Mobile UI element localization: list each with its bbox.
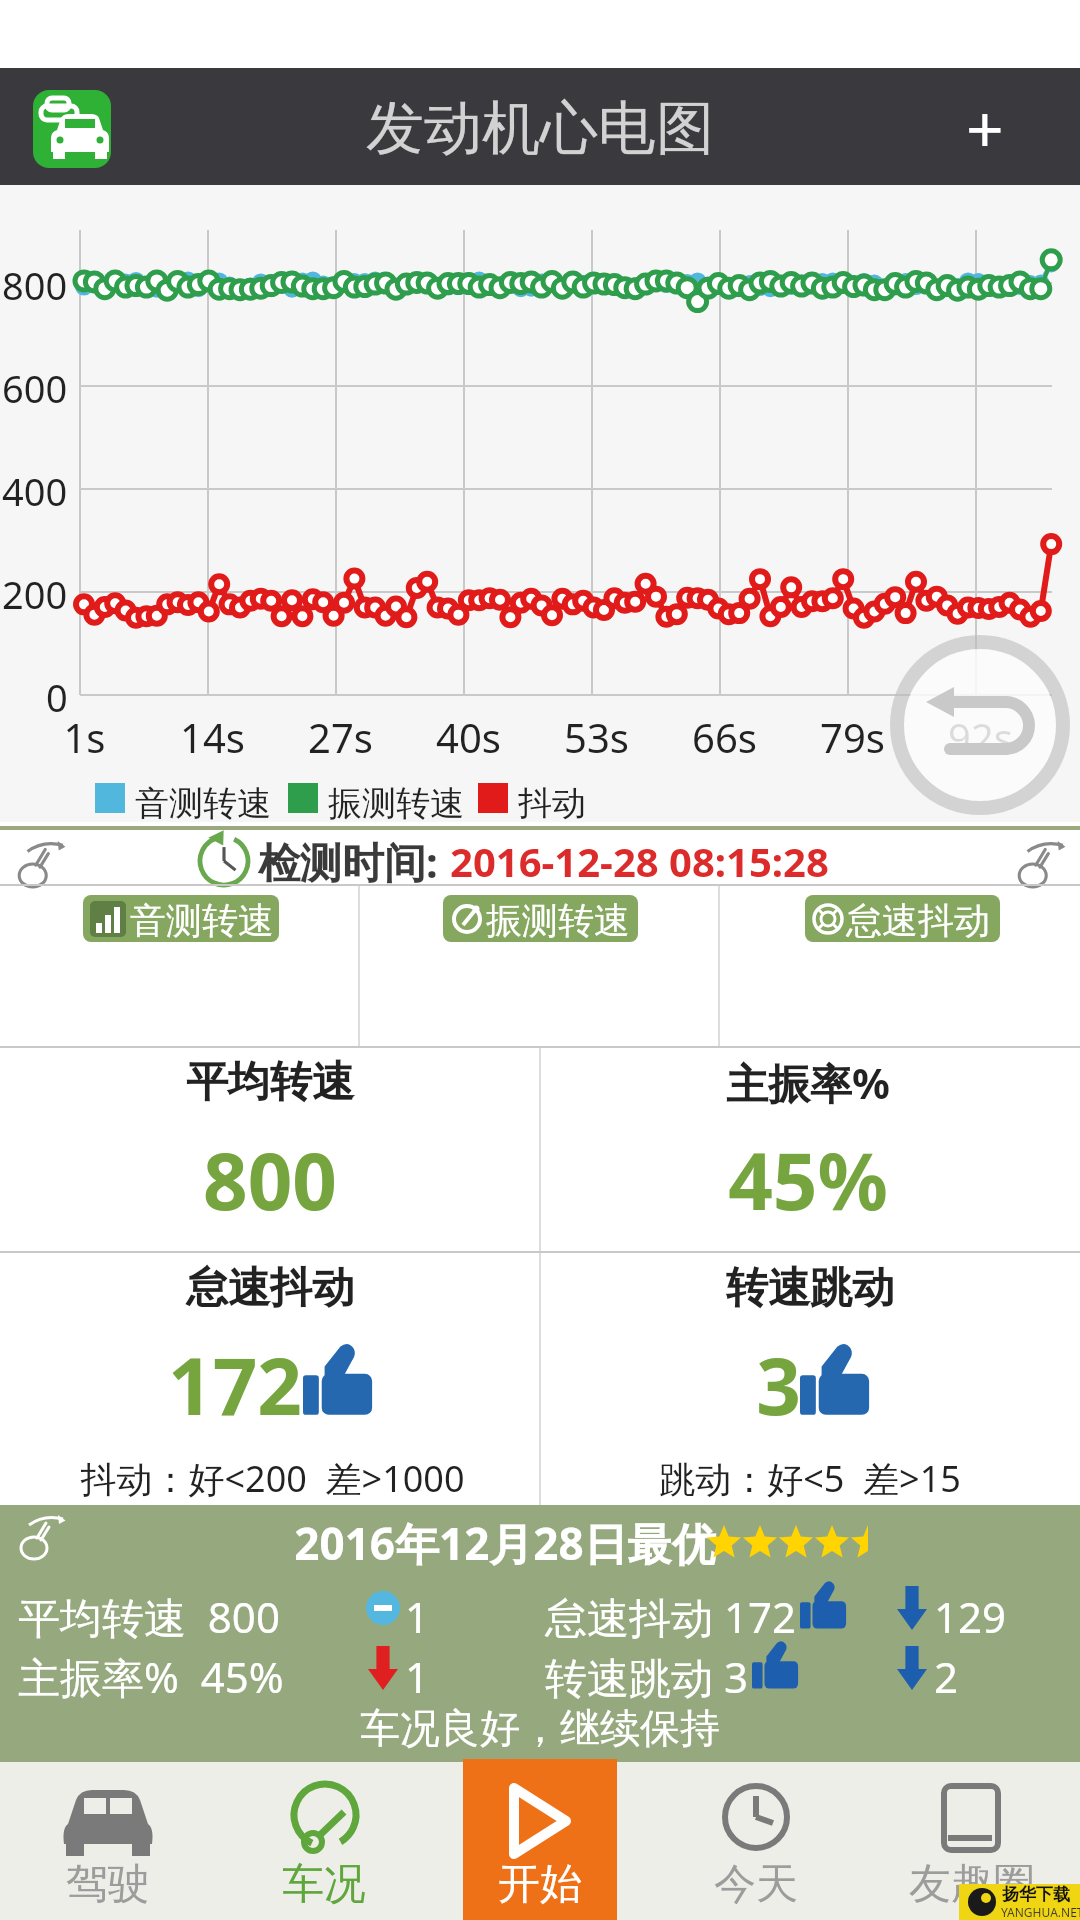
- staticText: 平均转速 800: [18, 1588, 280, 1645]
- staticText: 172: [168, 1332, 302, 1438]
- staticText: 1: [405, 1648, 430, 1705]
- staticText: 92s: [948, 710, 1013, 764]
- staticText: 66s: [692, 710, 757, 764]
- staticText: 平均转速: [186, 1056, 354, 1109]
- staticText: 开始: [498, 1858, 582, 1911]
- staticText: 200: [2, 568, 68, 616]
- staticText: 14s: [180, 710, 245, 764]
- staticText: 驾驶: [66, 1858, 150, 1911]
- staticText: 45%: [728, 1127, 888, 1233]
- staticText: 转速跳动 3: [545, 1648, 748, 1705]
- staticText: 友趣圈: [909, 1858, 1035, 1911]
- staticText: 车况: [282, 1858, 366, 1911]
- staticText: YANGHUA.NET: [1001, 1904, 1080, 1920]
- staticText: 检测时间:: [258, 833, 438, 890]
- staticText: 音测转速: [130, 898, 274, 943]
- staticText: 转速跳动: [726, 1262, 894, 1315]
- staticText: 主振率% 45%: [18, 1648, 284, 1705]
- staticText: 怠速抖动: [186, 1262, 354, 1315]
- staticText: 2: [934, 1648, 959, 1705]
- staticText: 主振率%: [726, 1054, 890, 1111]
- staticText: 音测转速: [135, 782, 271, 825]
- staticText: 发动机心电图: [366, 92, 714, 165]
- staticText: 53s: [564, 710, 629, 764]
- staticText: 振测转速: [328, 782, 464, 825]
- staticText: 27s: [308, 710, 373, 764]
- staticText: 800: [203, 1127, 337, 1233]
- staticText: 0: [46, 671, 68, 719]
- staticText: 1s: [63, 710, 106, 764]
- staticText: 抖动：好<200 差>1000: [80, 1454, 465, 1503]
- staticText: 振测转速: [486, 898, 630, 943]
- staticText: 抖动: [518, 782, 586, 825]
- staticText: 129: [934, 1588, 1007, 1645]
- staticText: 600: [2, 362, 68, 410]
- staticText: 车况良好，继续保持: [360, 1703, 720, 1753]
- staticText: 怠速抖动: [846, 898, 990, 943]
- staticText: 40s: [436, 710, 501, 764]
- staticText: 怠速抖动 172: [545, 1588, 796, 1645]
- staticText: 400: [2, 465, 68, 513]
- staticText: 2016-12-28 08:15:28: [450, 834, 829, 888]
- staticText: +: [966, 82, 1004, 172]
- staticText: 今天: [714, 1858, 798, 1911]
- staticText: 扬华下载: [1002, 1884, 1070, 1905]
- staticText: 79s: [820, 710, 885, 764]
- staticText: 3: [756, 1332, 801, 1438]
- staticText: 2016年12月28日最优: [294, 1513, 716, 1573]
- staticText: 1: [405, 1588, 430, 1645]
- staticText: 跳动：好<5 差>15: [659, 1454, 961, 1503]
- staticText: 800: [2, 259, 68, 307]
